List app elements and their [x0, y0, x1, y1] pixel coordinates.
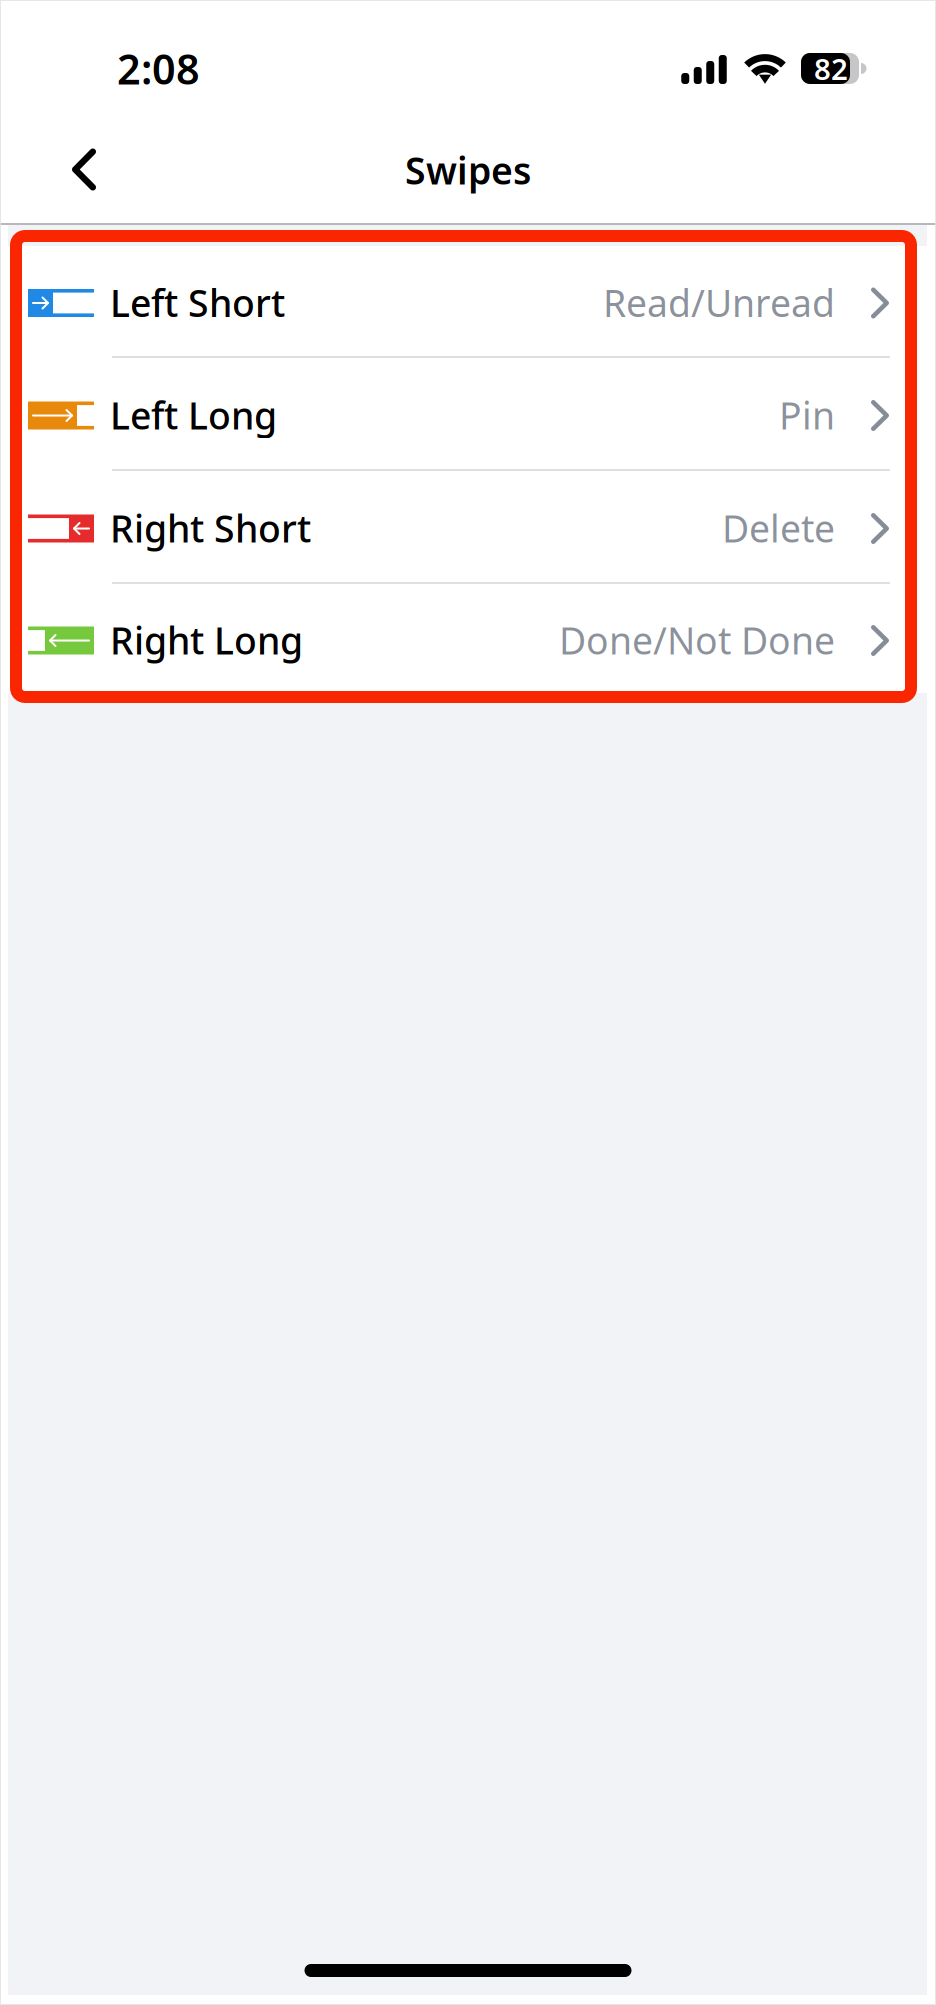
staticText: Pin — [779, 390, 835, 440]
button[interactable]: Left Long — [0, 358, 936, 469]
staticText: Read/Unread — [603, 278, 835, 327]
staticText: Left Short — [110, 278, 285, 327]
staticText: 82 — [814, 49, 848, 88]
button[interactable]: Right Long — [0, 584, 936, 693]
button[interactable]: Left Short — [0, 246, 936, 356]
staticText: Right Short — [110, 503, 311, 553]
button[interactable]: Back — [41, 102, 127, 224]
staticText: Done/Not Done — [559, 615, 835, 665]
staticText: 2:08 — [117, 41, 200, 96]
staticText: Left Long — [110, 390, 277, 440]
button[interactable]: Right Short — [0, 471, 936, 582]
staticText: Swipes — [405, 145, 531, 195]
staticText: Right Long — [110, 615, 303, 665]
staticText: Delete — [722, 503, 835, 553]
